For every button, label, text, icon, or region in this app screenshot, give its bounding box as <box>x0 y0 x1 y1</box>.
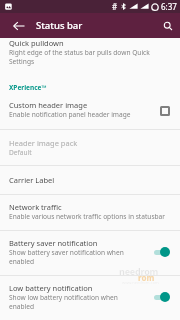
button[interactable]: Search <box>156 14 180 38</box>
button[interactable]: Network traffic <box>0 202 180 221</box>
staticText: needrom <box>119 265 159 277</box>
staticText: Show low battery notification when enabl… <box>9 293 144 311</box>
staticText: rom <box>138 272 155 283</box>
button[interactable]: Battery saver notification <box>0 229 180 274</box>
staticText: Right edge of the status bar pulls down … <box>9 48 152 66</box>
button[interactable]: Carrier Label <box>0 166 180 194</box>
staticText: Carrier Label <box>9 175 55 185</box>
button[interactable]: Custom header image <box>0 100 180 119</box>
staticText: 6:37 <box>161 1 177 12</box>
staticText: Show battery saver notification when ena… <box>9 248 144 266</box>
staticText: # <box>112 1 118 12</box>
staticText: Status bar <box>36 19 83 32</box>
staticText: Quick pulldown <box>9 38 64 48</box>
button[interactable]: Quick pulldown <box>0 38 180 66</box>
button[interactable]: Low battery notification <box>0 274 180 319</box>
staticText: Default <box>9 148 32 157</box>
staticText: Network traffic <box>9 202 62 212</box>
staticText: Custom header image <box>9 100 88 110</box>
staticText: Header image pack <box>9 138 78 148</box>
staticText: XPerience™ <box>9 83 47 92</box>
staticText: www.needrom.com <box>122 280 159 285</box>
staticText: Low battery notification <box>9 283 93 293</box>
staticText: Battery saver notification <box>9 238 98 248</box>
staticText: Enable various network traffic options i… <box>9 212 166 221</box>
button[interactable]: Back <box>6 13 31 38</box>
staticText: Enable notification panel header image <box>9 110 131 119</box>
